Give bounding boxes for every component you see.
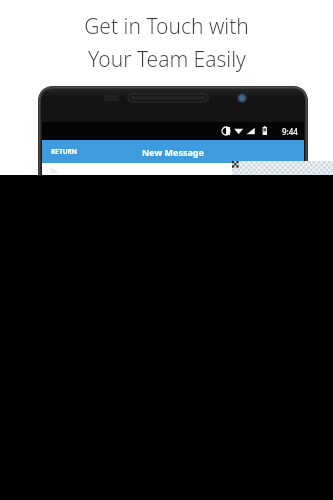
staticText: To:: [50, 167, 59, 175]
button[interactable]: RETURN: [42, 143, 87, 160]
staticText: 9:44: [282, 126, 298, 137]
staticText: Get in Touch with: [84, 12, 249, 41]
staticText: Your Team Easily: [88, 45, 246, 74]
staticText: RETURN: [51, 147, 78, 156]
other: Front camera: [236, 92, 248, 104]
staticText: New Message: [142, 146, 204, 158]
